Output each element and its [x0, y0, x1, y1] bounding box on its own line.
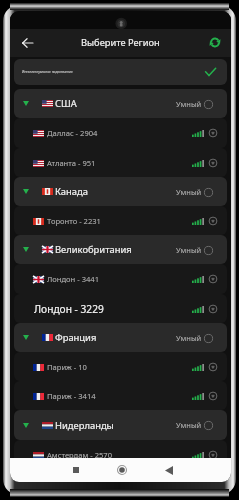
- staticText: Лондон - 3229: [34, 302, 104, 316]
- staticText: Умный: [176, 99, 202, 109]
- button[interactable]: Home: [113, 461, 131, 479]
- button[interactable]: Великобритания: [14, 235, 227, 264]
- staticText: Великобритания: [55, 243, 132, 256]
- staticText: США: [55, 97, 77, 110]
- button[interactable]: Интеллектуальное подключение: [14, 59, 227, 85]
- button[interactable]: Париж - 10: [14, 352, 227, 381]
- staticText: Умный: [176, 420, 202, 430]
- staticText: Умный: [176, 245, 202, 255]
- button[interactable]: Лондон - 3229: [14, 294, 227, 323]
- button[interactable]: США: [14, 89, 227, 118]
- button[interactable]: Атланта - 951: [14, 148, 227, 177]
- button[interactable]: Нидерланды: [14, 410, 227, 440]
- button[interactable]: Франция: [14, 323, 227, 352]
- staticText: Торонто - 2231: [47, 216, 101, 226]
- staticText: Канада: [55, 185, 88, 198]
- staticText: Атланта - 951: [47, 158, 96, 168]
- button[interactable]: Back: [160, 461, 178, 479]
- staticText: Выберите Регион: [81, 36, 160, 49]
- button[interactable]: Амстердам - 2570: [14, 440, 227, 469]
- staticText: Нидерланды: [55, 419, 114, 432]
- button[interactable]: Торонто - 2231: [14, 206, 227, 235]
- staticText: Париж - 3414: [47, 391, 96, 401]
- button[interactable]: Канада: [14, 177, 227, 206]
- button[interactable]: Refresh: [206, 33, 224, 51]
- button[interactable]: Париж - 3414: [14, 381, 227, 410]
- staticText: Умный: [176, 333, 202, 343]
- staticText: Интеллектуальное подключение: [22, 70, 73, 74]
- staticText: Даллас - 2904: [47, 128, 98, 138]
- staticText: Амстердам - 2570: [47, 450, 113, 460]
- staticText: Умный: [176, 187, 202, 197]
- button[interactable]: Даллас - 2904: [14, 118, 227, 148]
- staticText: Париж - 10: [47, 362, 87, 372]
- button[interactable]: Recent apps: [67, 461, 85, 479]
- button[interactable]: Back: [17, 33, 37, 53]
- staticText: Франция: [55, 331, 97, 344]
- button[interactable]: Лондон - 3441: [14, 264, 227, 294]
- staticText: Лондон - 3441: [47, 274, 100, 284]
